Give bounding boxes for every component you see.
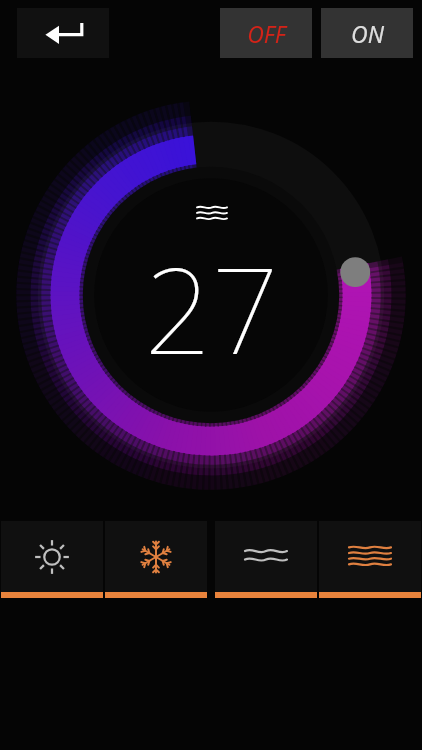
- button[interactable]: Back: [17, 8, 109, 58]
- button[interactable]: Fan high: [318, 521, 422, 598]
- button[interactable]: Cool: [104, 521, 208, 598]
- staticText: ON: [351, 18, 384, 49]
- button[interactable]: Fan low: [214, 521, 318, 598]
- button[interactable]: Heat: [0, 521, 104, 598]
- staticText: OFF: [247, 18, 286, 49]
- button[interactable]: ON: [321, 8, 413, 58]
- button[interactable]: OFF: [220, 8, 312, 58]
- staticText: 27: [144, 228, 279, 389]
